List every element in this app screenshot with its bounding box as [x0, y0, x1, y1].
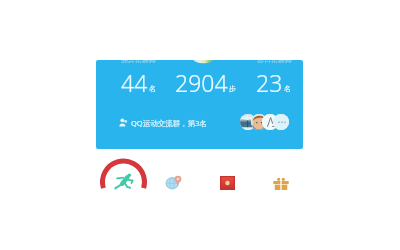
staticText: 名 [284, 84, 291, 93]
staticText: 44 [121, 67, 148, 98]
staticText: 名 [149, 84, 156, 93]
staticText: QQ运动交流群，第3名 [131, 118, 208, 128]
button[interactable]: Gifts [255, 161, 307, 205]
button[interactable]: 我在步数榜 [96, 60, 303, 149]
button[interactable]: Running [97, 161, 149, 205]
button[interactable]: Explore [148, 160, 200, 204]
staticText: 今日步数榜 [257, 60, 292, 63]
staticText: 2904 [175, 67, 228, 98]
staticText: 步 [229, 84, 236, 93]
staticText: 23 [256, 67, 283, 98]
button[interactable]: Red packet [201, 161, 253, 205]
staticText: 我在步数榜 [121, 60, 156, 63]
